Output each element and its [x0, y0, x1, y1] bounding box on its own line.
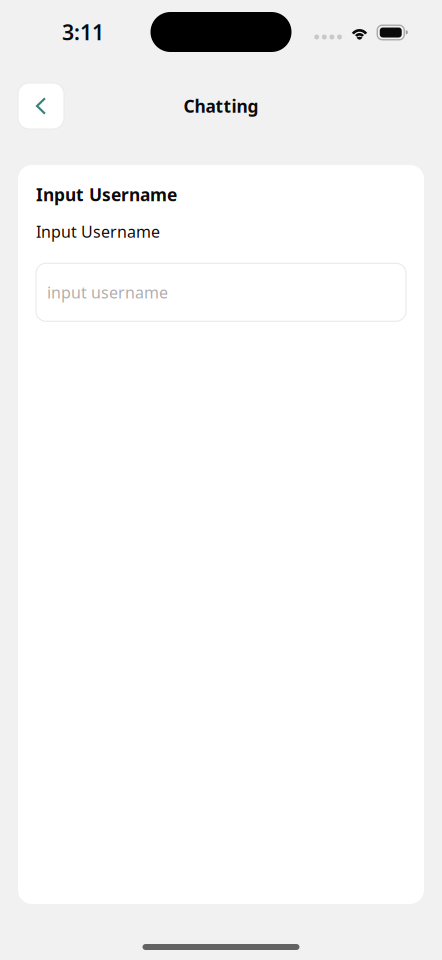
staticText: Input Username	[36, 183, 177, 206]
staticText: input username	[47, 282, 168, 303]
button[interactable]: input username	[36, 263, 406, 321]
staticText: 3:11	[62, 18, 104, 46]
staticText: Chatting	[183, 94, 258, 117]
staticText: Input Username	[36, 221, 160, 242]
button[interactable]: Back	[18, 83, 64, 129]
